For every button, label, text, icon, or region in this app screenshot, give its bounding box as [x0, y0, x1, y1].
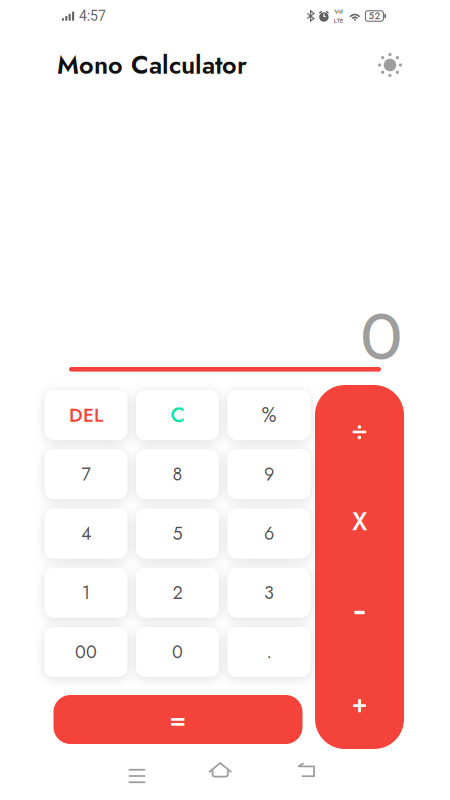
button[interactable]: 1	[44, 568, 127, 618]
button[interactable]: %	[227, 390, 310, 440]
button[interactable]: Divide	[315, 385, 404, 476]
button[interactable]: 6	[227, 508, 310, 558]
staticText: =	[169, 700, 186, 739]
button[interactable]: Back	[296, 761, 330, 791]
button[interactable]: 3	[227, 568, 310, 618]
button[interactable]: 0	[136, 627, 219, 677]
button[interactable]: Add	[315, 658, 404, 749]
staticText: 4	[81, 520, 91, 546]
staticText: 0	[360, 297, 403, 375]
button[interactable]: 7	[44, 449, 127, 499]
staticText: X	[352, 503, 367, 540]
button[interactable]: Recent apps	[120, 761, 154, 791]
staticText: 7	[81, 461, 90, 487]
staticText: 4:57	[79, 8, 106, 24]
staticText: DEL	[69, 401, 103, 429]
staticText: 9	[264, 461, 274, 487]
button[interactable]: .	[227, 627, 310, 677]
staticText: 2	[172, 580, 182, 606]
button[interactable]: =	[53, 695, 302, 744]
button[interactable]: Toggle theme	[370, 45, 410, 85]
staticText: 0	[172, 639, 183, 665]
staticText: LTE	[334, 16, 344, 25]
button[interactable]: 00	[44, 627, 127, 677]
staticText: 1	[82, 580, 90, 606]
button[interactable]: 9	[227, 449, 310, 499]
button[interactable]: 5	[136, 508, 219, 558]
staticText: %	[261, 400, 276, 429]
staticText: 00	[75, 639, 97, 665]
button[interactable]: Multiply	[315, 476, 404, 567]
staticText: +	[351, 685, 367, 722]
staticText: 5	[172, 520, 182, 546]
staticText: 6	[264, 520, 274, 546]
button[interactable]: 2	[136, 568, 219, 618]
button[interactable]: DEL	[44, 390, 127, 440]
button[interactable]: 8	[136, 449, 219, 499]
button[interactable]: 4	[44, 508, 127, 558]
staticText: Vol	[334, 7, 343, 16]
button[interactable]: Home	[208, 761, 242, 791]
staticText: .	[266, 639, 271, 665]
staticText: Mono Calculator	[57, 47, 247, 83]
staticText: C	[170, 400, 184, 430]
staticText: ÷	[351, 412, 367, 449]
staticText: 3	[264, 580, 274, 606]
staticText: 8	[172, 461, 182, 487]
button[interactable]: C	[136, 390, 219, 440]
button[interactable]: Subtract	[315, 567, 404, 658]
staticText: 52	[368, 9, 380, 23]
